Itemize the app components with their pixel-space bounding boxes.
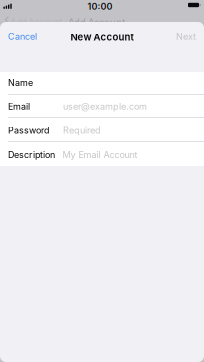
staticText: Cancel [8,31,37,42]
staticText: New Account [70,31,133,43]
button[interactable]: Description [0,142,204,168]
staticText: user@example.com [63,101,147,112]
button[interactable]: Email [0,94,204,119]
staticText: Email [8,101,30,112]
button[interactable]: Password [0,118,204,143]
staticText: My Email Account [62,149,137,160]
staticText: Add Account [68,17,125,28]
button[interactable]: Name [0,72,204,94]
staticText: Password [8,125,49,136]
staticText: 10:00 [87,1,112,12]
staticText: Next [176,31,196,42]
staticText: Name [8,77,33,88]
button[interactable]: Cancel [0,25,45,47]
staticText: Add Account [10,17,62,27]
button[interactable]: Next [159,25,204,47]
staticText: Description [8,149,55,160]
staticText: Required [63,125,101,136]
